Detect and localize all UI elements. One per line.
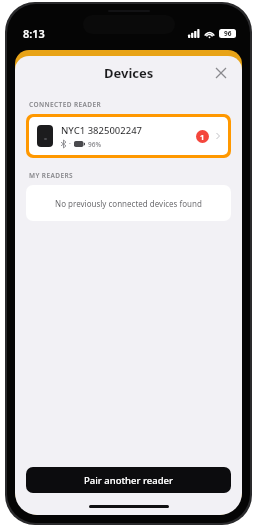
staticText: Devices [104,64,154,82]
button[interactable]: Pair another reader [26,467,231,493]
staticText: 96 [224,29,232,38]
staticText: 8:13 [23,26,45,41]
staticText: 1 [200,132,205,142]
staticText: · [69,139,71,149]
staticText: CONNECTED READER [29,100,102,109]
button[interactable]: NYC1 3825002247 [26,114,231,158]
staticText: Pair another reader [84,474,174,487]
staticText: No previously connected devices found [55,198,202,209]
staticText: MY READERS [29,171,73,180]
button[interactable]: Close [208,60,234,86]
staticText: NYC1 3825002247 [61,124,143,137]
staticText: 96% [88,140,101,149]
